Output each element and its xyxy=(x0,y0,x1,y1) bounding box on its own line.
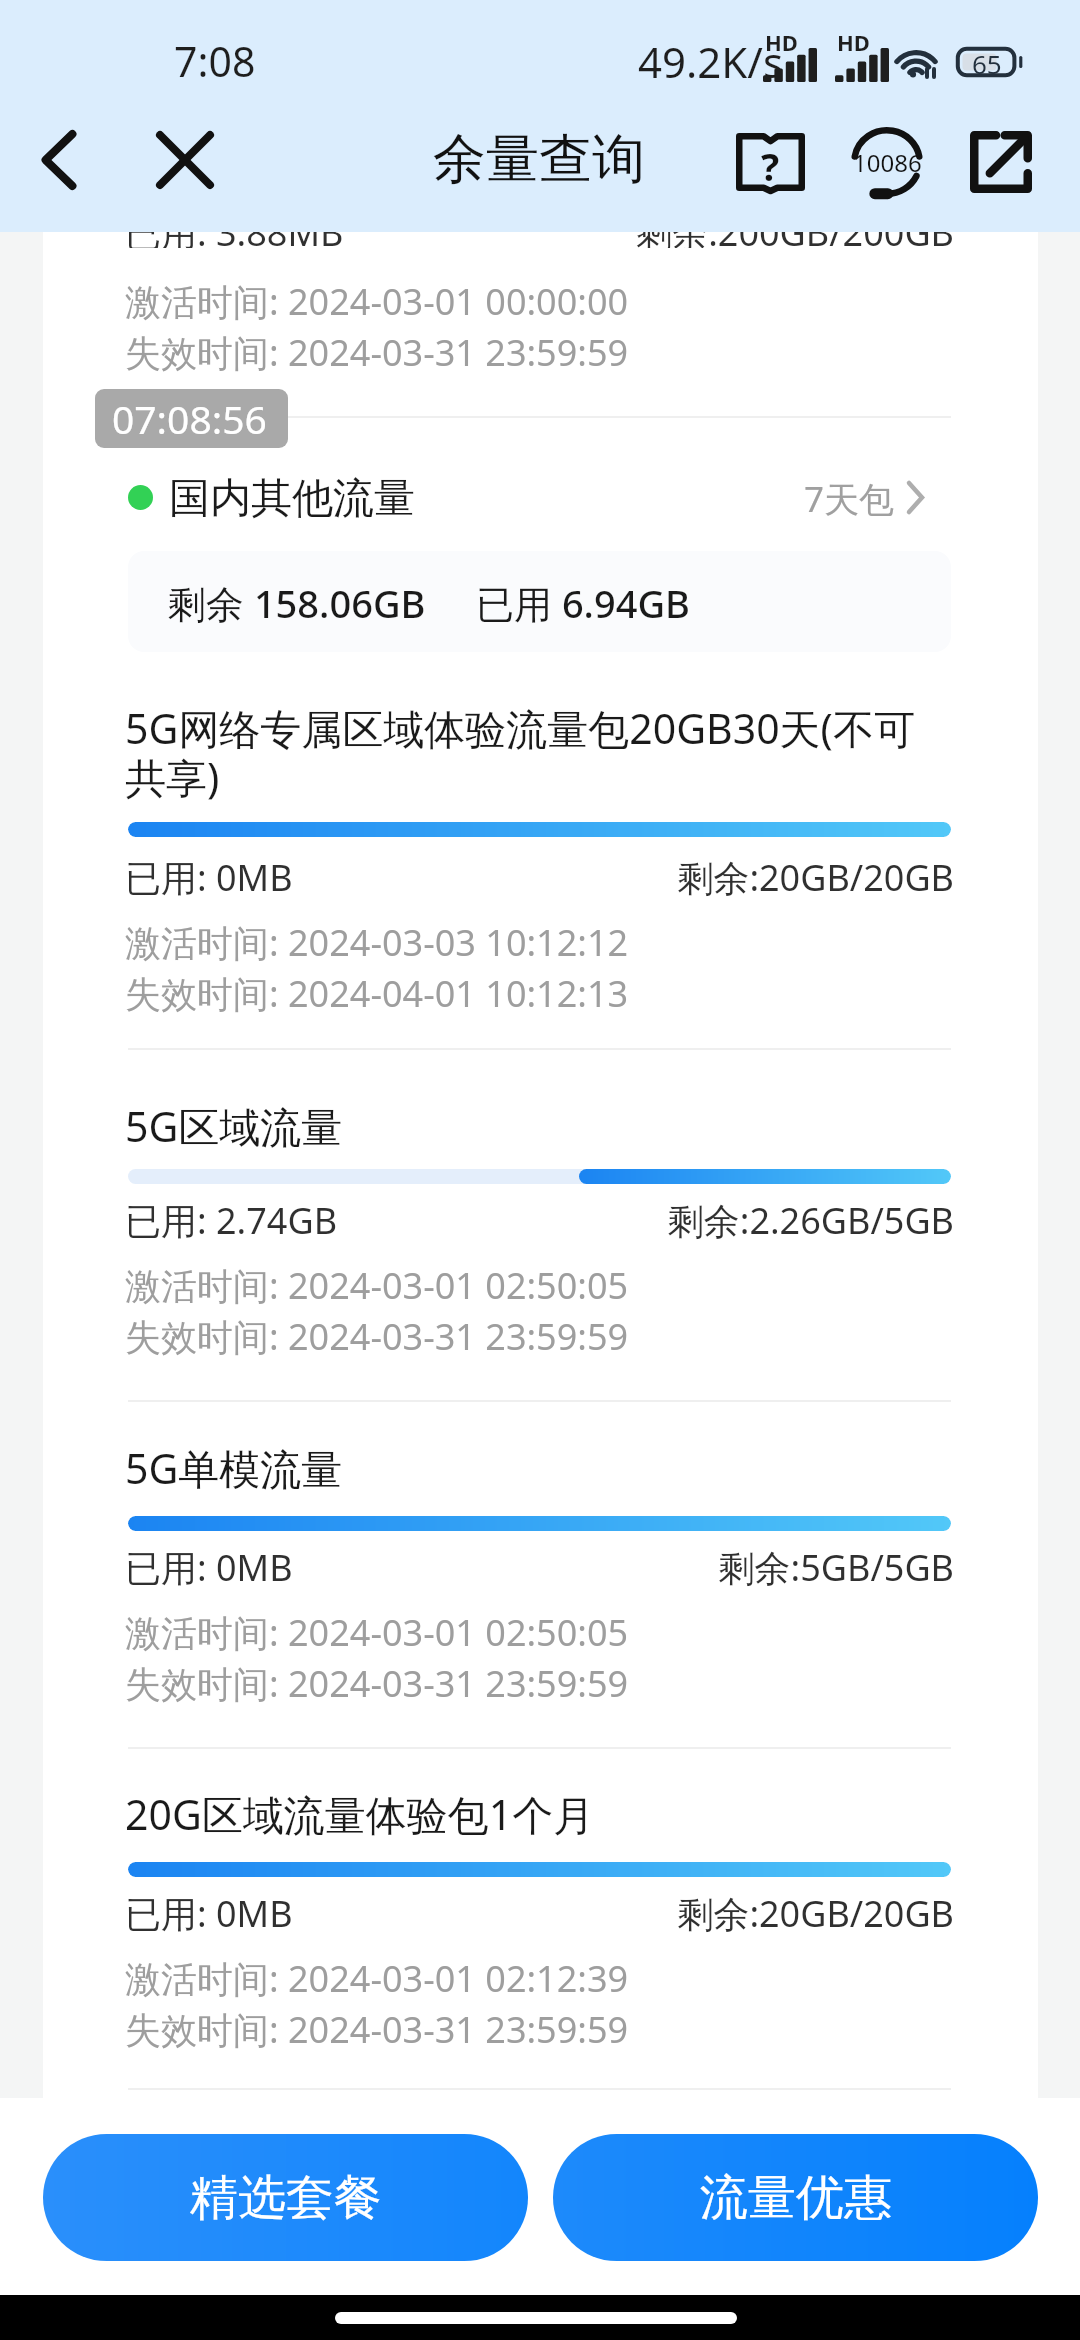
staticText: 20G区域流量体验包1个月 xyxy=(125,1786,595,1842)
staticText: 剩余:20GB/20GB xyxy=(0,1889,954,1938)
staticText: 07:08:56 xyxy=(112,392,267,445)
staticText: 5G区域流量 xyxy=(125,1098,343,1154)
staticText: 失效时间: 2024-03-31 23:59:59 xyxy=(125,1659,629,1708)
staticText: 10086 xyxy=(853,146,922,179)
staticText: 5G网络专属区域体验流量包20GB30天(不可 xyxy=(125,700,915,756)
button[interactable]: Share xyxy=(951,112,1051,212)
staticText: 已用: 0MB xyxy=(125,853,293,902)
button[interactable] xyxy=(43,1423,1038,1747)
staticText: 剩余:200GB/200GB xyxy=(0,232,954,248)
button[interactable] xyxy=(43,1081,1038,1400)
staticText: 余量查询 xyxy=(433,126,645,193)
button[interactable]: 流量优惠 xyxy=(553,2134,1038,2261)
staticText: 共享) xyxy=(125,749,220,805)
staticText: 65 xyxy=(972,46,1002,76)
staticText: 7天包 xyxy=(0,475,894,523)
staticText: 失效时间: 2024-03-31 23:59:59 xyxy=(125,328,629,377)
staticText: 激活时间: 2024-03-01 02:12:39 xyxy=(125,1954,629,2003)
staticText: 已用: 3.88MB xyxy=(125,232,344,248)
staticText: HD xyxy=(837,27,870,57)
button[interactable] xyxy=(43,683,1038,1048)
staticText: 流量优惠 xyxy=(700,2168,892,2228)
staticText: 激活时间: 2024-03-01 02:50:05 xyxy=(125,1608,629,1657)
button[interactable] xyxy=(43,1769,1038,2088)
staticText: 已用: 0MB xyxy=(125,1543,293,1592)
staticText: 已用 6.94GB xyxy=(476,577,690,629)
staticText: 失效时间: 2024-03-31 23:59:59 xyxy=(125,1312,629,1361)
staticText: 激活时间: 2024-03-01 02:50:05 xyxy=(125,1261,629,1310)
button[interactable]: Call 10086 xyxy=(837,112,937,212)
staticText: 激活时间: 2024-03-03 10:12:12 xyxy=(125,918,629,967)
button[interactable]: Back xyxy=(14,115,104,205)
staticText: 剩余:5GB/5GB xyxy=(0,1543,954,1592)
staticText: 已用: 0MB xyxy=(125,1889,293,1938)
staticText: 失效时间: 2024-04-01 10:12:13 xyxy=(125,969,629,1018)
staticText: 剩余:2.26GB/5GB xyxy=(0,1196,954,1245)
button[interactable]: Close xyxy=(140,115,230,205)
staticText: 失效时间: 2024-03-31 23:59:59 xyxy=(125,2005,629,2054)
staticText: 7:08 xyxy=(174,33,256,89)
staticText: 精选套餐 xyxy=(190,2168,382,2228)
staticText: ? xyxy=(761,140,780,192)
staticText: 国内其他流量 xyxy=(169,473,415,525)
button[interactable]: Help xyxy=(720,112,820,212)
staticText: HD xyxy=(765,27,798,57)
staticText: 剩余 158.06GB xyxy=(168,577,426,629)
staticText: 剩余:20GB/20GB xyxy=(0,853,954,902)
button[interactable]: 精选套餐 xyxy=(43,2134,528,2261)
button[interactable] xyxy=(128,462,951,532)
staticText: 激活时间: 2024-03-01 00:00:00 xyxy=(125,277,629,326)
staticText: 已用: 2.74GB xyxy=(125,1196,338,1245)
staticText: 49.2K/s xyxy=(638,33,784,90)
staticText: 5G单模流量 xyxy=(125,1440,343,1496)
